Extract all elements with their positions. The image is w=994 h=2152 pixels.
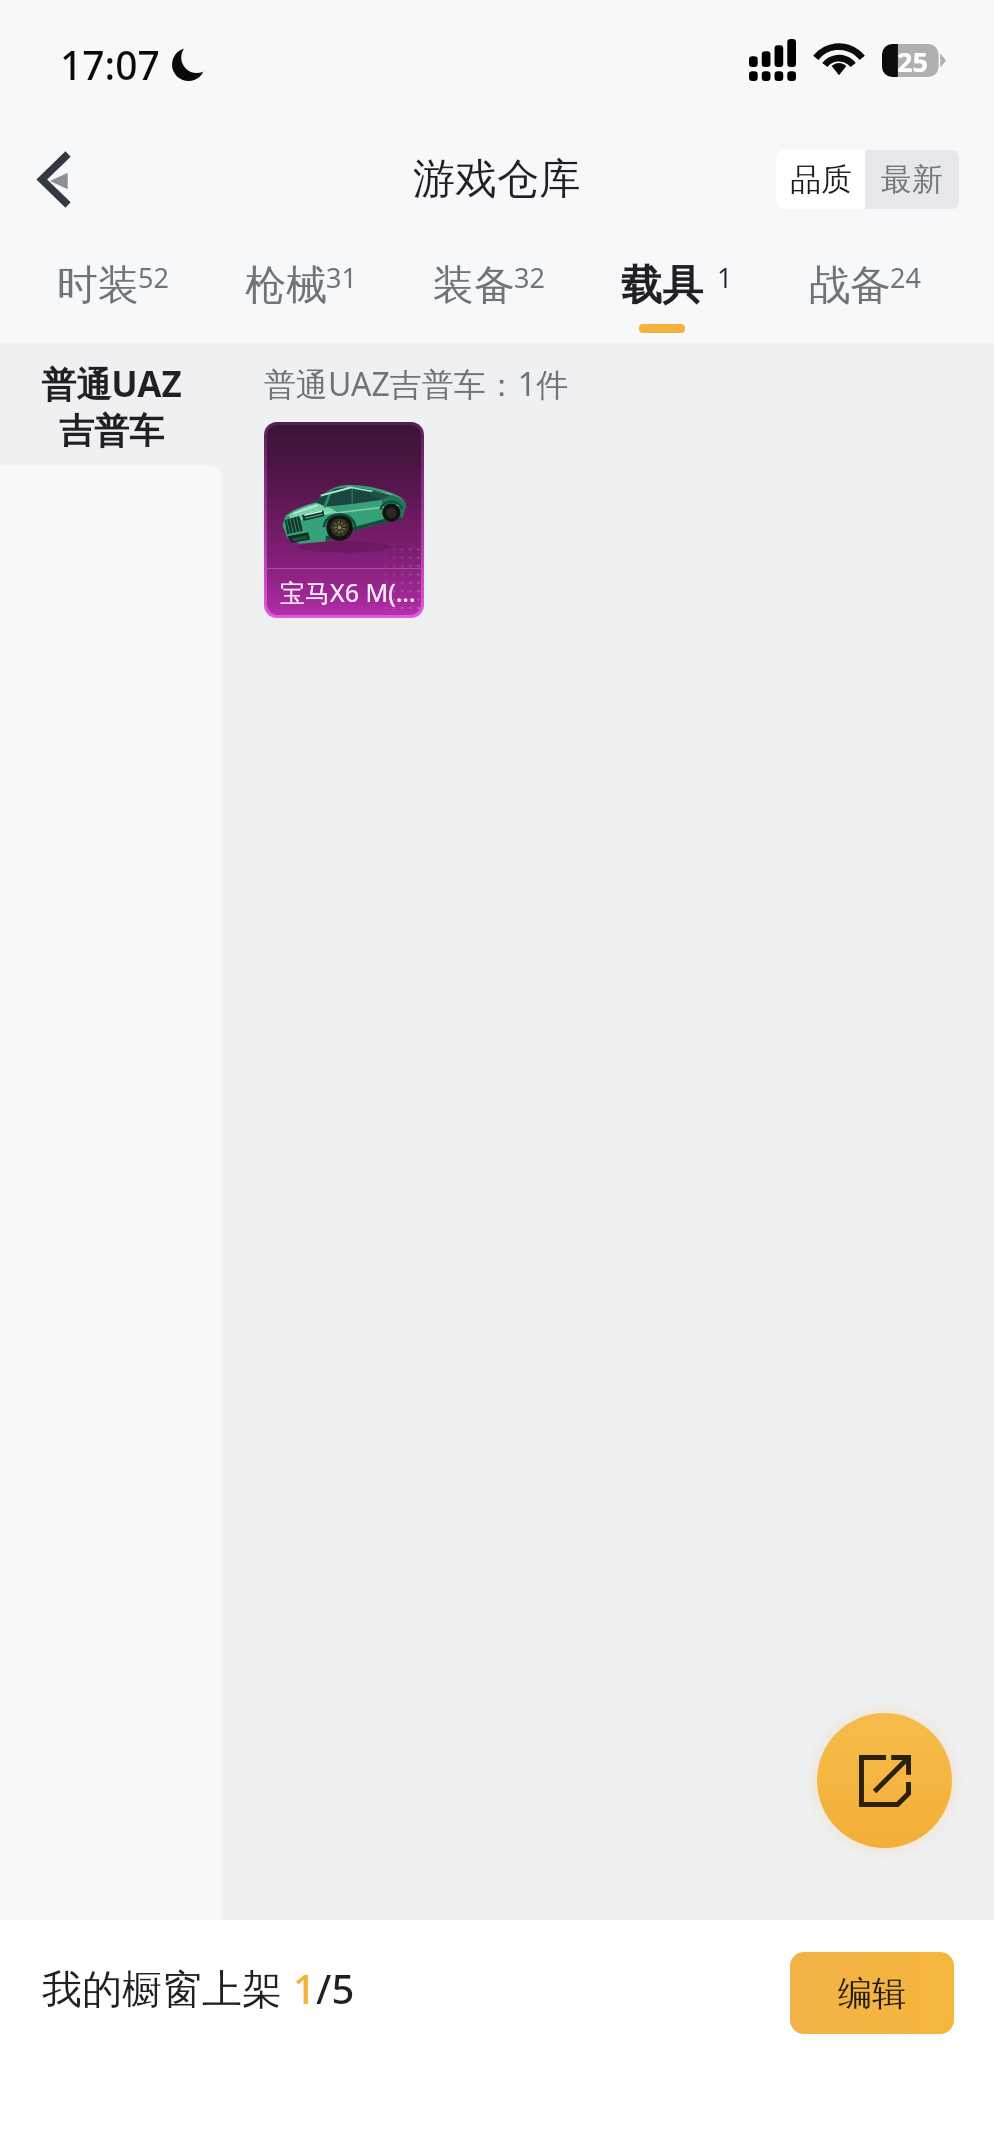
staticText: 我的橱窗上架 (42, 1960, 293, 2015)
staticText: 游戏仓库 (413, 153, 581, 206)
staticText: 载具 (621, 260, 703, 312)
button[interactable]: 普通UAZ 吉普车 (0, 343, 222, 465)
staticText: 25 (897, 43, 928, 76)
button[interactable]: 时装 (12, 238, 201, 343)
staticText: 普通UAZ 吉普车 (41, 360, 182, 454)
button[interactable]: Open in new window (817, 1713, 952, 1848)
button[interactable]: 战备 (765, 238, 953, 343)
staticText: 1 (293, 1961, 316, 2015)
staticText: 编辑 (838, 1972, 906, 2015)
staticText: 52 (138, 259, 169, 296)
staticText: 战备 (809, 260, 891, 312)
staticText: 装备 (433, 260, 515, 312)
staticText: 宝马X6 M(... (280, 575, 421, 609)
staticText: 31 (326, 259, 357, 296)
staticText: 枪械 (245, 260, 327, 312)
button[interactable]: 宝马X6 M(... (264, 422, 424, 618)
staticText: 时装 (57, 260, 139, 312)
staticText: 最新 (881, 160, 943, 199)
staticText: 品质 (790, 160, 852, 199)
button[interactable]: 品质 (776, 150, 865, 209)
button[interactable]: 装备 (389, 238, 577, 343)
button[interactable]: 编辑 (790, 1952, 954, 2034)
staticText: 1 (717, 259, 733, 296)
staticText: 普通UAZ吉普车：1件 (264, 362, 569, 406)
button[interactable]: Back (18, 143, 90, 215)
button[interactable]: 载具 (577, 238, 765, 343)
staticText: 32 (514, 259, 545, 296)
staticText: 24 (890, 259, 921, 296)
button[interactable]: 枪械 (201, 238, 389, 343)
button[interactable]: 最新 (865, 150, 959, 209)
staticText: /5 (316, 1961, 355, 2015)
staticText: 17:07 (60, 38, 160, 91)
